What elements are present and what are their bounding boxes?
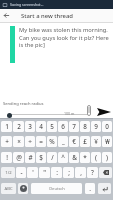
button[interactable]: / <box>47 152 57 163</box>
button[interactable]: 9 <box>91 121 101 132</box>
button[interactable]: ? <box>87 167 98 178</box>
button[interactable]: " <box>39 167 50 178</box>
staticText: - <box>20 168 23 177</box>
button[interactable]: $ <box>36 152 46 163</box>
button[interactable]: ' <box>27 167 38 178</box>
button[interactable]: 7 <box>69 121 79 132</box>
button[interactable]: Radius slider <box>7 113 12 118</box>
button[interactable]: £ <box>80 136 90 147</box>
staticText: 5 <box>50 122 54 131</box>
staticText: / <box>51 153 54 162</box>
staticText: Saving screenshot... <box>10 2 44 7</box>
staticText: ) <box>106 153 108 162</box>
button[interactable]: - <box>16 167 26 178</box>
staticText: × <box>17 137 21 146</box>
button[interactable]: : <box>51 167 62 178</box>
staticText: ₩ <box>105 137 110 146</box>
staticText: £ <box>83 137 87 146</box>
staticText: Deutsch <box>49 186 65 191</box>
staticText: , <box>80 168 82 177</box>
button[interactable]: ¥ <box>91 136 101 147</box>
button[interactable]: Back <box>0 9 13 22</box>
staticText: 3 <box>28 122 32 131</box>
staticText: 100 m <box>64 111 75 116</box>
staticText: _ <box>62 137 65 146</box>
staticText: . <box>89 184 91 193</box>
button[interactable]: # <box>25 152 35 163</box>
staticText: & <box>72 153 77 162</box>
button[interactable]: _ <box>58 136 68 147</box>
button[interactable]: 3 <box>25 121 35 132</box>
staticText: ; <box>68 168 70 177</box>
staticText: % <box>49 137 55 146</box>
button[interactable]: Emoji <box>18 183 28 194</box>
button[interactable]: 4 <box>36 121 46 132</box>
staticText: 8 <box>83 122 87 131</box>
button[interactable]: = <box>36 136 46 147</box>
button[interactable]: Backspace <box>99 167 112 178</box>
staticText: Sending reach radius <box>3 101 44 107</box>
staticText: = <box>39 137 43 146</box>
staticText: ÷ <box>28 137 32 146</box>
staticText: 4 <box>39 122 43 131</box>
button[interactable]: 2 <box>13 121 24 132</box>
button[interactable]: ÷ <box>25 136 35 147</box>
staticText: € <box>72 137 76 146</box>
button[interactable]: ! <box>1 152 12 163</box>
button[interactable]: 1 <box>1 121 12 132</box>
staticText: @ <box>16 153 22 162</box>
button[interactable]: . <box>85 183 95 194</box>
staticText: ^ <box>61 153 65 162</box>
button[interactable]: ₩ <box>102 136 112 147</box>
staticText: + <box>5 137 9 146</box>
staticText: ! <box>6 153 8 162</box>
button[interactable]: & <box>69 152 79 163</box>
staticText: Start a new thread <box>21 12 74 20</box>
button[interactable]: 5 <box>47 121 57 132</box>
button[interactable]: Deutsch <box>31 183 82 194</box>
staticText: # <box>28 153 33 162</box>
button[interactable]: Enter <box>98 183 111 194</box>
button[interactable]: 0 <box>102 121 112 132</box>
staticText: 7 <box>72 122 76 131</box>
button[interactable]: 8 <box>80 121 90 132</box>
staticText: 1/2 <box>5 170 12 176</box>
button[interactable]: ; <box>63 167 74 178</box>
button[interactable]: * <box>80 152 90 163</box>
button[interactable]: ABC <box>1 183 16 194</box>
staticText: 9 <box>94 122 98 131</box>
button[interactable]: € <box>69 136 79 147</box>
staticText: ¥ <box>94 137 98 146</box>
staticText: * <box>83 153 87 162</box>
staticText: 6 <box>61 122 65 131</box>
button[interactable]: Attach file <box>82 104 95 117</box>
button[interactable]: , <box>75 167 86 178</box>
staticText: ' <box>32 168 34 177</box>
staticText: 2 <box>17 122 21 131</box>
button[interactable]: + <box>1 136 12 147</box>
button[interactable]: ) <box>102 152 112 163</box>
button[interactable]: ( <box>91 152 101 163</box>
staticText: ABC <box>4 186 13 192</box>
staticText: 1 <box>5 122 9 131</box>
staticText: $ <box>39 153 43 162</box>
button[interactable]: × <box>13 136 24 147</box>
button[interactable]: 6 <box>58 121 68 132</box>
button[interactable]: 1/2 <box>1 167 15 178</box>
staticText: ? <box>91 168 94 177</box>
button[interactable]: @ <box>13 152 24 163</box>
staticText: " <box>43 168 46 177</box>
staticText: 0 <box>105 122 109 131</box>
staticText: : <box>56 168 58 177</box>
button[interactable]: % <box>47 136 57 147</box>
staticText: ( <box>95 153 97 162</box>
button[interactable]: Send <box>95 103 112 120</box>
button[interactable]: ^ <box>58 152 68 163</box>
staticText: My bike was stolen this morning. Can you… <box>19 26 109 48</box>
